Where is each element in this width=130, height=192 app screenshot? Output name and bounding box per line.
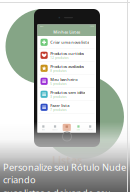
staticText: Fazer lista <box>50 103 69 108</box>
staticText: 12 produtos <box>50 56 68 60</box>
staticText: 5 produtos <box>50 82 66 86</box>
staticText: 100% <box>90 25 94 27</box>
button[interactable]: Rótulo Nude <box>61 122 73 132</box>
staticText: Meu banheiro <box>50 77 77 82</box>
button[interactable]: Produtos avaliados <box>37 62 96 75</box>
staticText: Início <box>42 129 45 131</box>
staticText: Produtos sem idéia <box>50 90 85 95</box>
button[interactable]: Produtos curtidos <box>37 49 96 62</box>
button[interactable]: Fazer lista <box>37 101 96 114</box>
button[interactable]: Início <box>37 122 49 132</box>
button[interactable]: Listas <box>73 122 84 132</box>
staticText: Listas <box>76 129 80 131</box>
staticText: 8 produtos <box>50 69 66 73</box>
staticText: Minhas Listas <box>53 29 80 35</box>
staticText: Produtos avaliados <box>50 64 84 69</box>
staticText: Produtos curtidos <box>50 51 84 56</box>
staticText: Perfil <box>88 129 92 131</box>
staticText: 3 produtos <box>50 95 66 99</box>
staticText: 7 produtos <box>50 108 66 112</box>
staticText: Personalize seu Rótulo Nude criando <box>3 161 126 186</box>
staticText: Busca <box>53 129 58 131</box>
staticText: Nude <box>65 129 69 131</box>
staticText: Criar uma nova lista <box>50 40 89 45</box>
button[interactable]: Produtos sem idéia <box>37 88 96 101</box>
staticText: Listas <box>52 153 82 167</box>
button[interactable]: Perfil <box>84 122 96 132</box>
button[interactable]: Criar uma nova lista <box>37 36 96 49</box>
staticText: 09:41 <box>40 25 44 27</box>
staticText: suas listas e deixando seu aplicativo <box>3 187 111 192</box>
button[interactable]: Busca <box>49 122 61 132</box>
button[interactable]: Meu banheiro <box>37 75 96 88</box>
